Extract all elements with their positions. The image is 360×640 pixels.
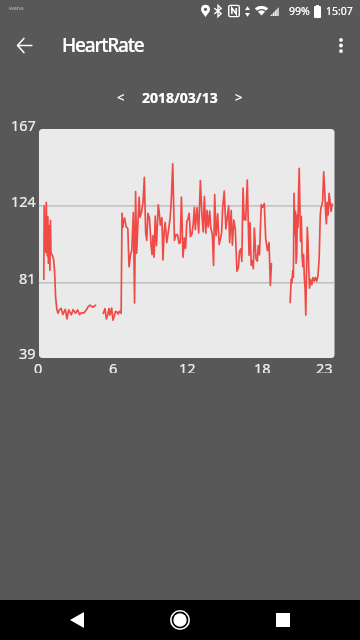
staticText: > (235, 88, 243, 106)
staticText: 0 (34, 358, 43, 373)
staticText: 124 (11, 191, 36, 207)
button[interactable]: Recents (265, 602, 301, 638)
button[interactable]: Previous day (106, 84, 136, 110)
staticText: 6 (109, 358, 118, 373)
staticText: 99% (289, 4, 310, 18)
staticText: HeartRate (62, 32, 144, 58)
button[interactable]: Home (162, 602, 198, 638)
staticText: 167 (11, 115, 36, 131)
staticText: 12 (179, 358, 196, 373)
button[interactable]: More options (321, 26, 360, 65)
staticText: 15:07 (326, 4, 353, 18)
staticText: 18 (254, 358, 271, 373)
staticText: wena (9, 4, 24, 12)
button[interactable]: Back (4, 25, 44, 65)
staticText: 23 (316, 358, 333, 373)
staticText: 2018/03/13 (142, 88, 218, 107)
button[interactable]: Next day (224, 84, 254, 110)
staticText: 81 (19, 268, 36, 284)
staticText: < (117, 88, 125, 106)
button[interactable]: Back (59, 602, 95, 638)
staticText: 39 (19, 343, 36, 359)
